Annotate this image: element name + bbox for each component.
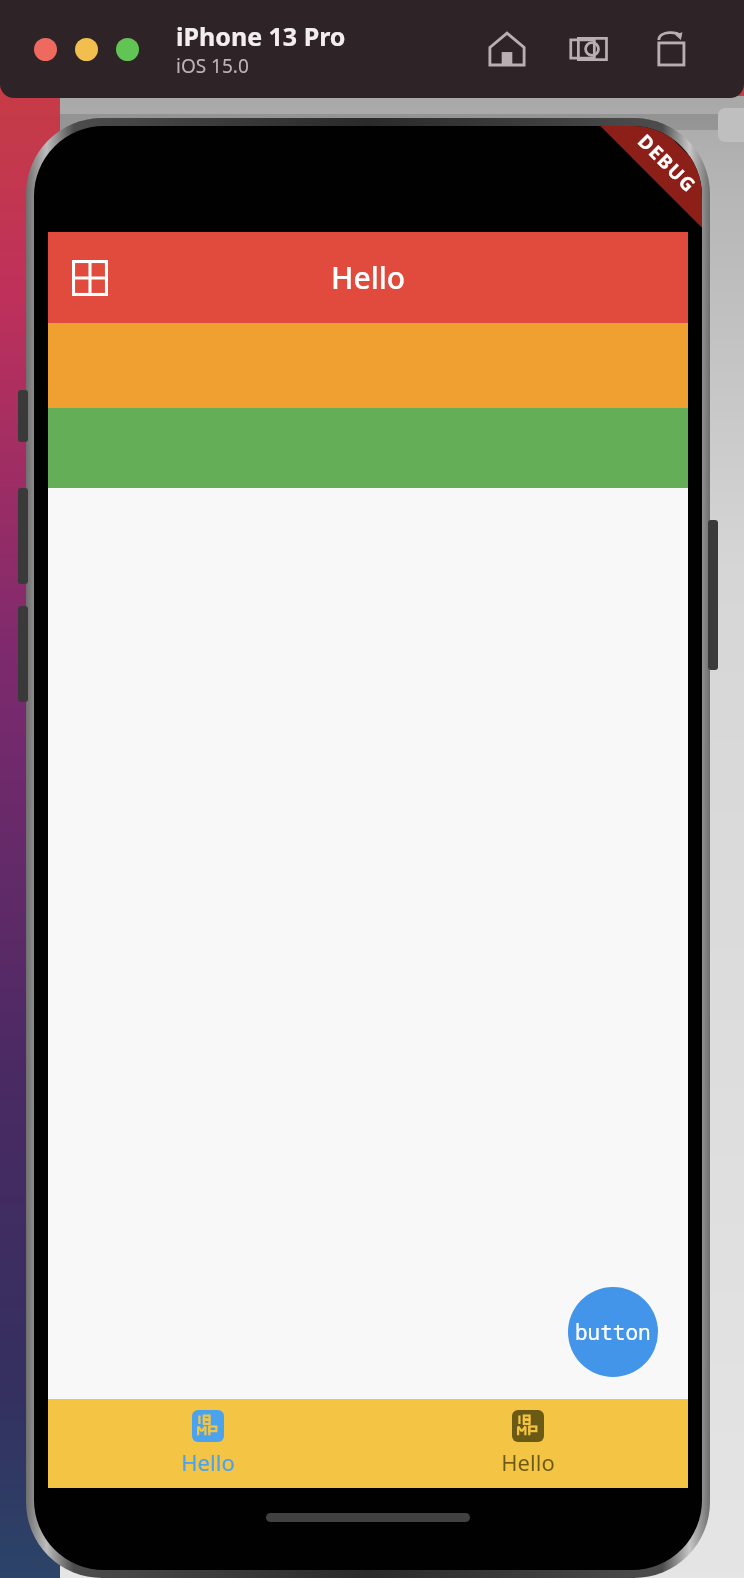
- button[interactable]: Screenshot: [562, 22, 616, 76]
- button[interactable]: Home: [480, 22, 534, 76]
- button[interactable]: Rotate device: [644, 22, 698, 76]
- button[interactable]: Open grid menu: [62, 250, 118, 306]
- staticText: iOS 15.0: [176, 53, 249, 79]
- staticText: DEBUG: [632, 128, 702, 198]
- staticText: Hello: [331, 257, 406, 298]
- staticText: iPhone 13 Pro: [176, 19, 346, 53]
- button[interactable]: button: [568, 1287, 658, 1377]
- staticText: Hello: [501, 1447, 555, 1477]
- button[interactable]: Window control: [116, 38, 139, 61]
- button[interactable]: Hello: [48, 1399, 368, 1488]
- button[interactable]: Hello: [368, 1399, 688, 1488]
- staticText: button: [575, 1318, 651, 1347]
- staticText: Hello: [181, 1447, 235, 1477]
- button[interactable]: Window control: [34, 38, 57, 61]
- button[interactable]: Window control: [75, 38, 98, 61]
